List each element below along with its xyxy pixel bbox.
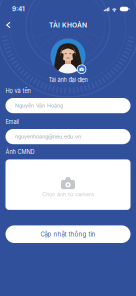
button[interactable]: nguyenhoang@neu.edu.vn (5, 129, 130, 144)
button[interactable]: Tải ảnh đại diện (48, 76, 87, 84)
staticText: Cập nhật thông tin (40, 231, 95, 238)
button[interactable]: Cập nhật thông tin (5, 225, 130, 243)
staticText: Tải ảnh đại diện (48, 77, 87, 83)
staticText: Nguyễn Văn Hoàng (15, 102, 63, 109)
button[interactable]: Upload profile photo (50, 38, 85, 73)
staticText: Chọn ảnh từ camera (42, 191, 94, 198)
staticText: 9:41 (12, 5, 25, 13)
staticText: Email (5, 119, 18, 125)
button[interactable]: Nguyễn Văn Hoàng (5, 98, 130, 113)
button[interactable]: Chọn ảnh từ camera (5, 159, 130, 210)
staticText: Ảnh CMND (5, 148, 34, 155)
button[interactable]: Back (1, 18, 16, 32)
staticText: TÀI KHOẢN (49, 21, 87, 29)
staticText: Họ và tên (5, 88, 30, 94)
staticText: nguyenhoang@neu.edu.vn (15, 133, 81, 140)
